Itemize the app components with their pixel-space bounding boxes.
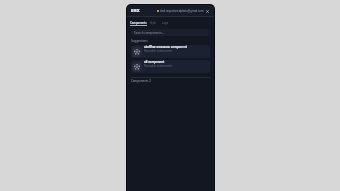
button[interactable]: Search components... [131,29,210,36]
button[interactable]: all component [131,60,210,73]
staticText: Components [130,21,147,25]
staticText: Reusable component [144,49,172,52]
staticText: aisdfhur awsxsaxs component [144,45,187,49]
staticText: Search components... [134,31,165,35]
staticText: all component [144,60,165,64]
staticText: BBX [131,8,140,13]
staticText: Reusable component [144,64,172,67]
staticText: Logs [162,21,168,25]
staticText: Components 2 [131,79,151,83]
button[interactable]: aisdfhur awsxsaxs component [131,45,210,58]
button[interactable]: Components [130,21,147,26]
staticText: Suggestions [131,39,148,43]
staticText: dnd.respontnedphoto@gmail.com [160,9,204,13]
button[interactable]: Close [205,9,210,14]
button[interactable]: Logs [162,21,168,26]
staticText: Style [150,21,157,25]
button[interactable]: Style [150,21,157,26]
